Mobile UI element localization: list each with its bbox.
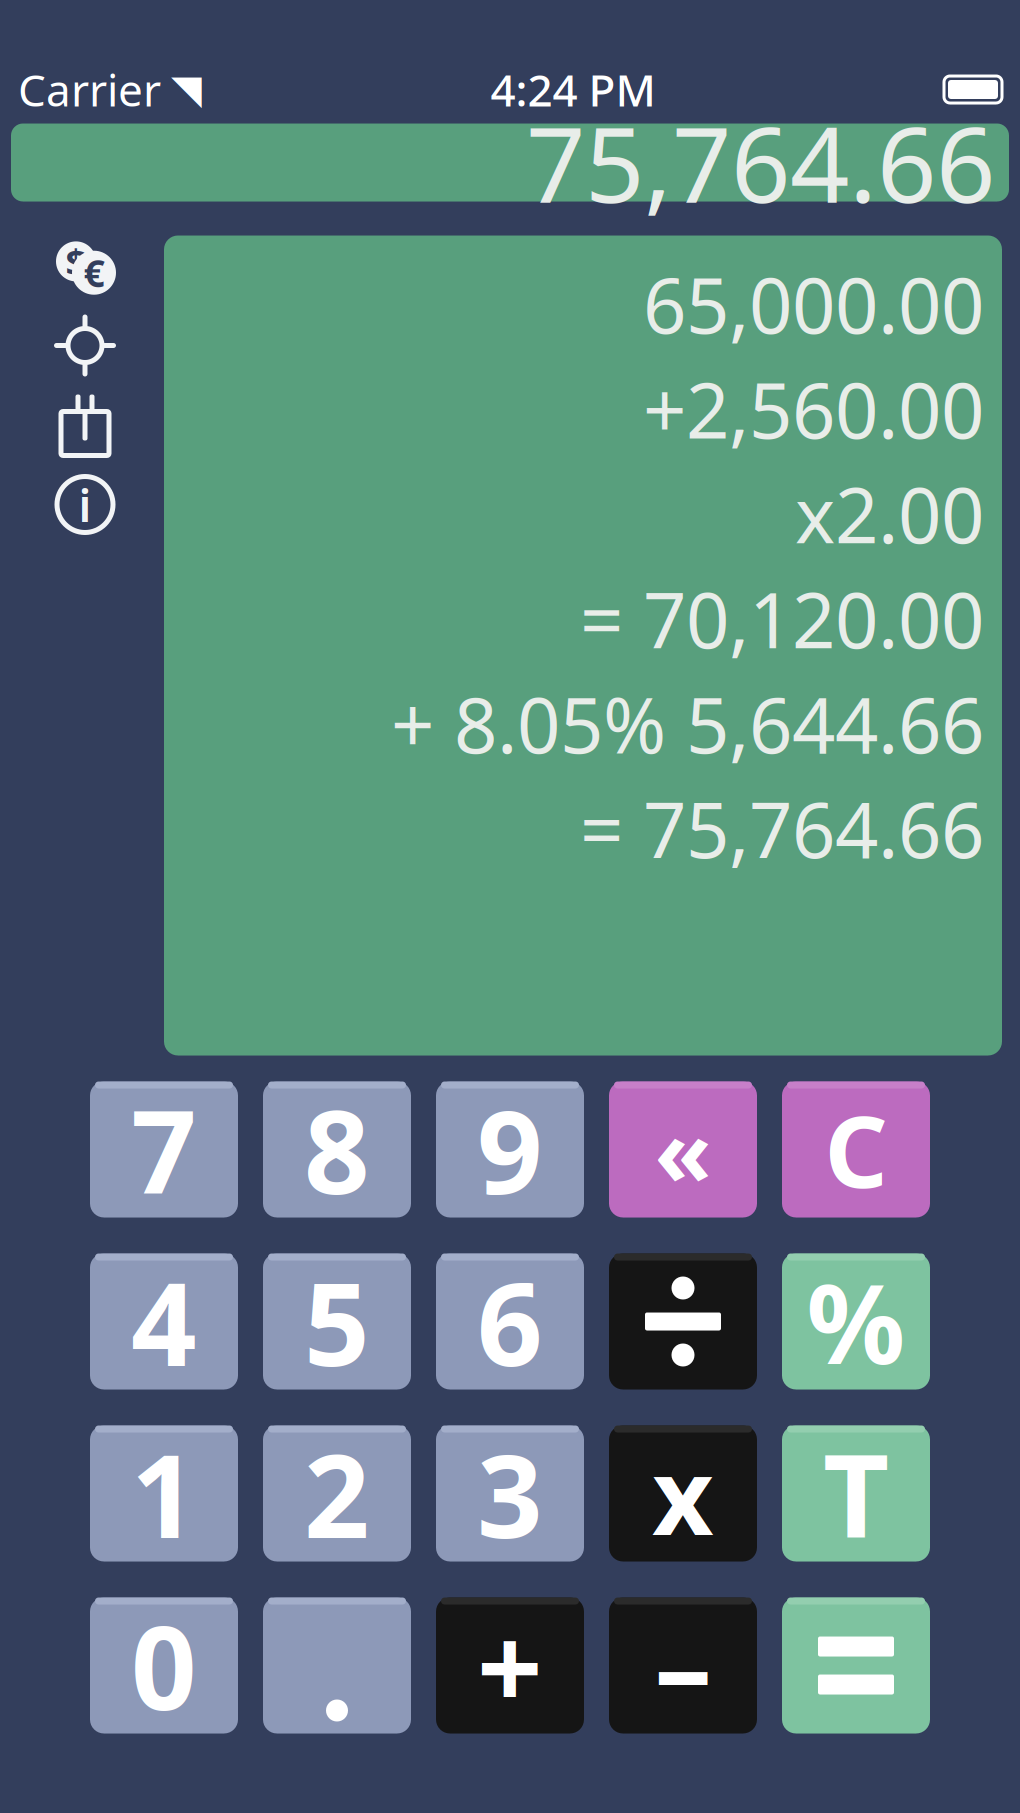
staticText: 8 bbox=[304, 1073, 370, 1226]
button[interactable]: 5 bbox=[263, 1253, 411, 1389]
staticText: € bbox=[83, 248, 104, 297]
button[interactable]: Brightness bbox=[53, 313, 117, 377]
staticText: 5 bbox=[304, 1245, 370, 1398]
staticText: 3 bbox=[477, 1417, 543, 1570]
staticText: = 70,120.00 bbox=[580, 568, 984, 669]
staticText: 9 bbox=[477, 1073, 543, 1226]
staticText: +2,560.00 bbox=[643, 358, 984, 459]
staticText: 65,000.00 bbox=[643, 253, 984, 354]
button[interactable]: Decimal point bbox=[263, 1597, 411, 1733]
staticText: + 8.05% 5,644.66 bbox=[391, 673, 984, 774]
button[interactable]: Subtract bbox=[609, 1597, 757, 1733]
staticText: – bbox=[654, 1589, 711, 1742]
staticText: + bbox=[477, 1589, 543, 1742]
staticText: « bbox=[654, 1087, 711, 1211]
staticText: x2.00 bbox=[795, 463, 984, 564]
staticText: $ bbox=[65, 237, 86, 285]
button[interactable]: 4 bbox=[90, 1253, 238, 1389]
staticText: T bbox=[823, 1417, 889, 1570]
staticText: i bbox=[78, 474, 91, 535]
button[interactable]: Tax bbox=[782, 1425, 930, 1561]
button[interactable]: Add bbox=[436, 1597, 584, 1733]
staticText: 7 bbox=[131, 1073, 197, 1226]
staticText: 6 bbox=[477, 1245, 543, 1398]
button[interactable]: 7 bbox=[90, 1081, 238, 1217]
staticText: = 75,764.66 bbox=[580, 778, 984, 879]
button[interactable]: Backspace bbox=[609, 1081, 757, 1217]
button[interactable]: Currency conversion bbox=[52, 235, 118, 297]
button[interactable]: 9 bbox=[436, 1081, 584, 1217]
staticText: 75,764.66 bbox=[526, 93, 995, 231]
button[interactable]: 3 bbox=[436, 1425, 584, 1561]
staticText: % bbox=[806, 1249, 905, 1394]
button[interactable]: Percent bbox=[782, 1253, 930, 1389]
staticText: ◥ bbox=[171, 67, 202, 112]
button[interactable]: Multiply bbox=[609, 1425, 757, 1561]
button[interactable]: 8 bbox=[263, 1081, 411, 1217]
staticText: 4 bbox=[131, 1245, 197, 1398]
button[interactable]: 0 bbox=[90, 1597, 238, 1733]
button[interactable]: Info bbox=[54, 473, 116, 535]
staticText: 1 bbox=[131, 1417, 197, 1570]
staticText: 2 bbox=[304, 1417, 370, 1570]
button[interactable]: Divide bbox=[609, 1253, 757, 1389]
button[interactable]: Equals bbox=[782, 1597, 930, 1733]
staticText: x bbox=[652, 1423, 714, 1564]
staticText: 4:24 PM bbox=[490, 60, 655, 119]
staticText: 0 bbox=[131, 1589, 197, 1742]
button[interactable]: Clear bbox=[782, 1081, 930, 1217]
button[interactable]: 2 bbox=[263, 1425, 411, 1561]
staticText: Carrier bbox=[18, 60, 161, 119]
button[interactable]: 6 bbox=[436, 1253, 584, 1389]
staticText: C bbox=[824, 1084, 887, 1215]
button[interactable]: 1 bbox=[90, 1425, 238, 1561]
button[interactable]: Share bbox=[54, 393, 116, 457]
